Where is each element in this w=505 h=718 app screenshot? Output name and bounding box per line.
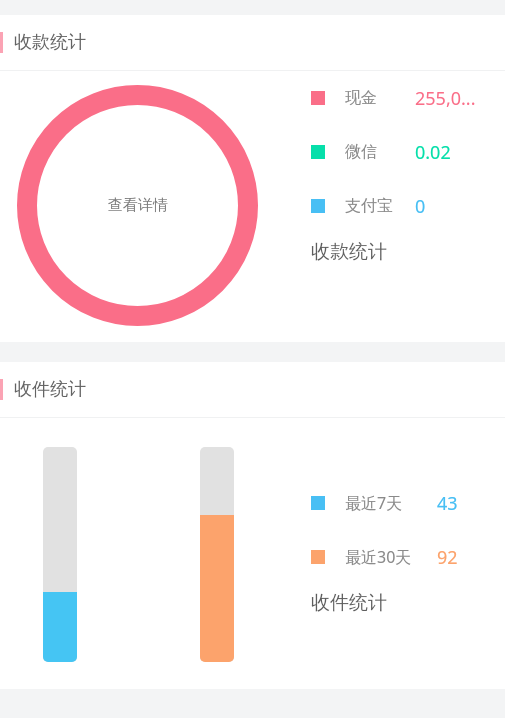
staticText: 255,0... [415, 86, 476, 111]
button[interactable]: 最近7天 43 [43, 447, 77, 662]
staticText: 92 [437, 545, 458, 570]
staticText: 0.02 [415, 140, 451, 165]
staticText: 最近7天 [345, 492, 403, 514]
staticText: 收款统计 [14, 31, 86, 54]
staticText: 现金 [345, 88, 377, 108]
staticText: 微信 [345, 142, 377, 162]
button[interactable]: 微信 [311, 125, 505, 179]
button[interactable]: 现金 [311, 71, 505, 125]
staticText: 查看详情 [108, 196, 168, 215]
staticText: 收件统计 [311, 591, 387, 615]
staticText: 最近30天 [345, 546, 412, 568]
button[interactable]: 最近30天 [311, 530, 505, 584]
button[interactable]: 支付宝 [311, 179, 505, 233]
staticText: 43 [437, 491, 458, 516]
staticText: 0 [415, 194, 426, 219]
staticText: 支付宝 [345, 196, 393, 216]
button[interactable]: 查看详情 [17, 85, 258, 326]
staticText: 收件统计 [14, 378, 86, 401]
button[interactable]: 最近7天 [311, 476, 505, 530]
staticText: 收款统计 [311, 240, 387, 264]
button[interactable]: 最近30天 92 [200, 447, 234, 662]
